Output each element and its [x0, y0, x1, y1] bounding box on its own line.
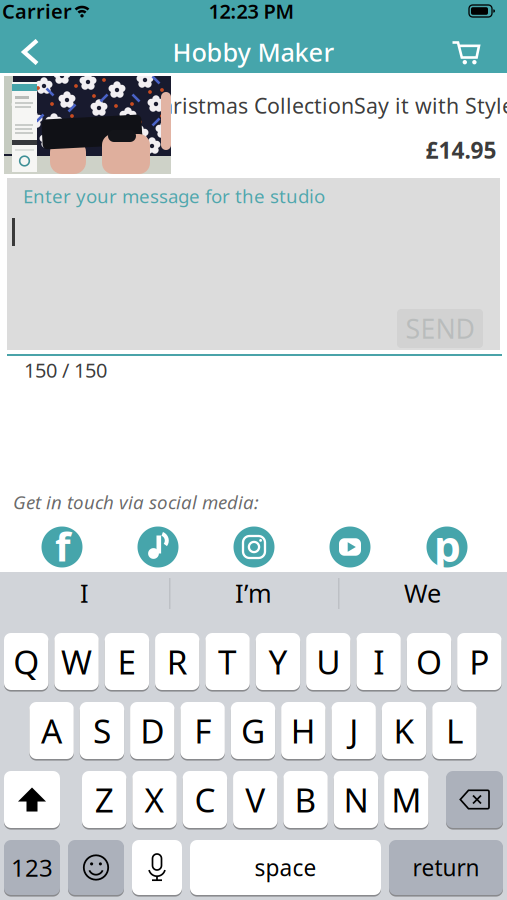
button[interactable]: 123	[4, 839, 60, 896]
button[interactable]: M	[384, 770, 428, 829]
staticText: p	[434, 517, 461, 574]
button[interactable]	[132, 839, 182, 896]
button[interactable]: W	[54, 632, 99, 691]
staticText: Enter your message for the studio	[23, 184, 325, 208]
staticText: X	[144, 777, 164, 822]
staticText: K	[393, 708, 414, 753]
staticText: I	[80, 576, 89, 610]
staticText: S	[93, 708, 111, 753]
button[interactable]: F	[180, 701, 225, 760]
button[interactable]: E	[105, 632, 149, 691]
button[interactable]: We	[342, 571, 502, 615]
button[interactable]	[329, 526, 371, 568]
button[interactable]	[446, 770, 503, 829]
staticText: E	[117, 639, 136, 684]
button[interactable]	[68, 839, 124, 896]
button[interactable]: SEND	[397, 309, 483, 348]
button[interactable]: T	[205, 632, 250, 691]
button[interactable]: G	[231, 701, 275, 760]
button[interactable]: Z	[82, 770, 126, 829]
staticText: H	[291, 708, 316, 753]
staticText: W	[61, 639, 92, 684]
staticText: We	[404, 576, 441, 610]
staticText: £14.95	[425, 135, 496, 165]
button[interactable]: X	[132, 770, 177, 829]
button[interactable]	[137, 526, 179, 568]
staticText: B	[295, 777, 317, 822]
staticText: I’m	[235, 576, 272, 610]
staticText: V	[245, 777, 265, 822]
button[interactable]: R	[155, 632, 199, 691]
staticText: P	[469, 639, 489, 684]
button[interactable]: J	[331, 701, 376, 760]
button[interactable]: H	[281, 701, 325, 760]
button[interactable]: I’m	[173, 571, 333, 615]
button[interactable]: return	[389, 839, 503, 896]
staticText: T	[218, 639, 237, 684]
staticText: hristmas CollectionSay it with Style Chr…	[160, 91, 507, 120]
staticText: A	[41, 708, 62, 753]
staticText: Y	[268, 639, 287, 684]
staticText: D	[140, 708, 164, 753]
staticText: J	[349, 708, 358, 753]
staticText: return	[412, 852, 479, 882]
button[interactable]: S	[80, 701, 124, 760]
staticText: 12:23 PM	[208, 0, 294, 24]
staticText: C	[194, 777, 215, 822]
button[interactable]: I	[356, 632, 401, 691]
staticText: R	[167, 639, 188, 684]
button[interactable]: A	[29, 701, 74, 760]
button[interactable]: Y	[256, 632, 300, 691]
button[interactable]: C	[183, 770, 227, 829]
staticText: Z	[95, 777, 114, 822]
button[interactable]: O	[407, 632, 451, 691]
button[interactable]: p	[426, 526, 468, 568]
button[interactable]: P	[457, 632, 502, 691]
staticText: L	[446, 708, 463, 753]
staticText: Hobby Maker	[172, 35, 334, 69]
staticText: SEND	[405, 311, 474, 346]
button[interactable]: B	[283, 770, 328, 829]
staticText: f	[55, 519, 70, 572]
button[interactable]: space	[190, 839, 381, 896]
staticText: Q	[13, 639, 39, 684]
button[interactable]	[20, 38, 42, 66]
staticText: G	[241, 708, 265, 753]
button[interactable]: Q	[4, 632, 48, 691]
staticText: 123	[11, 852, 53, 883]
button[interactable]: U	[306, 632, 350, 691]
staticText: F	[194, 708, 211, 753]
staticText: M	[391, 777, 421, 822]
staticText: 150 / 150	[24, 357, 107, 383]
staticText: O	[416, 639, 442, 684]
staticText: U	[316, 639, 340, 684]
button[interactable]: f	[41, 526, 83, 568]
button[interactable]	[233, 526, 275, 568]
button[interactable]: D	[130, 701, 174, 760]
staticText: N	[343, 777, 368, 822]
staticText: space	[254, 852, 316, 882]
staticText: Carrier	[2, 0, 72, 24]
button[interactable]: L	[432, 701, 477, 760]
staticText: I	[373, 639, 384, 684]
button[interactable]: N	[334, 770, 378, 829]
button[interactable]: V	[233, 770, 277, 829]
staticText: Get in touch via social media:	[13, 490, 259, 514]
button[interactable]	[4, 770, 60, 829]
button[interactable]: I	[4, 571, 164, 615]
button[interactable]	[451, 39, 481, 65]
button[interactable]: K	[382, 701, 426, 760]
